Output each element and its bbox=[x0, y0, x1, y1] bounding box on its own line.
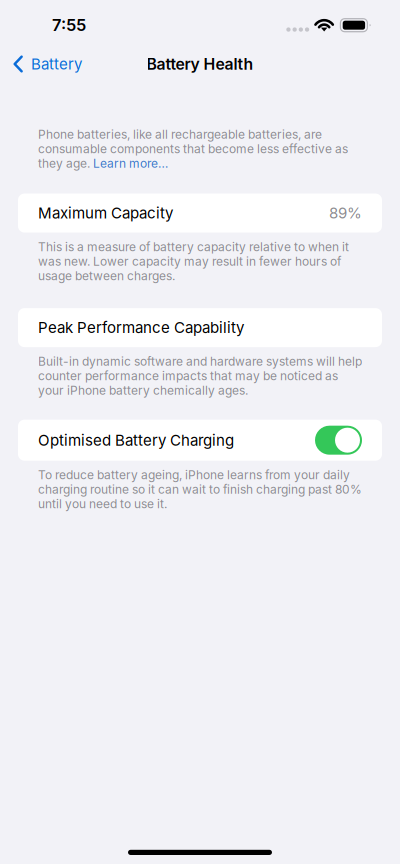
staticText: Battery bbox=[31, 55, 82, 73]
staticText: Maximum Capacity bbox=[38, 204, 173, 222]
button[interactable]: Optimised Battery Charging bbox=[315, 426, 362, 455]
staticText: Built-in dynamic software and hardware s… bbox=[38, 354, 362, 398]
staticText: Battery Health bbox=[146, 54, 253, 73]
staticText: 7:55 bbox=[52, 15, 86, 35]
staticText: 89% bbox=[329, 204, 362, 222]
staticText: Optimised Battery Charging bbox=[38, 431, 234, 449]
button[interactable]: Battery bbox=[0, 49, 92, 79]
staticText: This is a measure of battery capacity re… bbox=[38, 240, 349, 283]
staticText: Peak Performance Capability bbox=[38, 318, 244, 337]
staticText: To reduce battery ageing, iPhone learns … bbox=[38, 468, 362, 511]
button[interactable]: Peak Performance Capability bbox=[0, 308, 400, 347]
staticText: Phone batteries, like all rechargeable b… bbox=[38, 127, 348, 171]
